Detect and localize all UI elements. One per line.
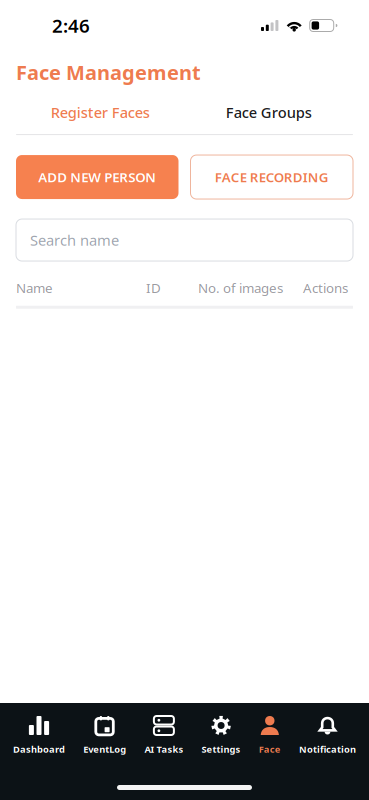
button[interactable]: FACE RECORDING — [190, 155, 353, 199]
button[interactable]: Register Faces — [16, 97, 184, 128]
button[interactable]: Notification — [299, 703, 356, 755]
staticText: ID — [146, 279, 161, 297]
button[interactable]: Dashboard — [13, 703, 65, 755]
staticText: AI Tasks — [144, 743, 183, 755]
button[interactable]: Face Groups — [184, 97, 353, 128]
staticText: Register Faces — [51, 103, 150, 122]
staticText: Dashboard — [13, 743, 65, 755]
staticText: FACE RECORDING — [215, 168, 329, 186]
staticText: 2:46 — [52, 13, 90, 38]
staticText: Name — [16, 279, 53, 297]
staticText: Face Groups — [226, 103, 312, 122]
staticText: Search name — [30, 230, 119, 250]
staticText: Notification — [299, 743, 356, 755]
staticText: Face Management — [16, 59, 201, 86]
staticText: EventLog — [83, 743, 126, 755]
button[interactable]: ADD NEW PERSON — [16, 155, 178, 199]
button[interactable]: AI Tasks — [144, 703, 183, 755]
staticText: Actions — [303, 279, 348, 297]
staticText: ADD NEW PERSON — [38, 168, 156, 186]
button[interactable]: Settings — [202, 703, 241, 755]
staticText: No. of images — [198, 279, 283, 297]
staticText: Face — [259, 743, 281, 755]
staticText: Settings — [202, 743, 241, 755]
button[interactable]: Face — [259, 703, 281, 755]
button[interactable]: EventLog — [83, 703, 126, 755]
